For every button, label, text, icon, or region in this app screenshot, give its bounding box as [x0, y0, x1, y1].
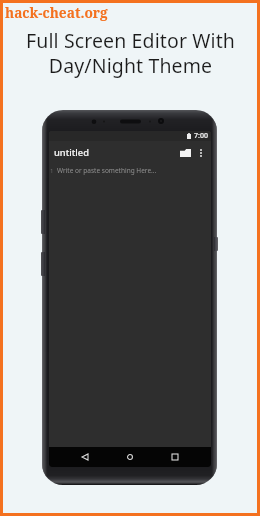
staticText: untitled	[54, 146, 89, 159]
staticText: Full Screen Editor With Day/Night Theme	[26, 27, 235, 79]
button[interactable]: 1	[49, 164, 211, 447]
button[interactable]: More options	[194, 146, 208, 160]
staticText: 7:00	[194, 131, 208, 141]
button[interactable]: Open file	[177, 145, 193, 161]
staticText: hack-cheat.org	[5, 3, 108, 22]
button[interactable]: Home	[120, 447, 140, 467]
staticText: 1	[50, 167, 54, 175]
button[interactable]: Back	[75, 447, 95, 467]
staticText: Write or paste something Here...	[57, 166, 157, 175]
button[interactable]: Recent apps	[165, 447, 185, 467]
